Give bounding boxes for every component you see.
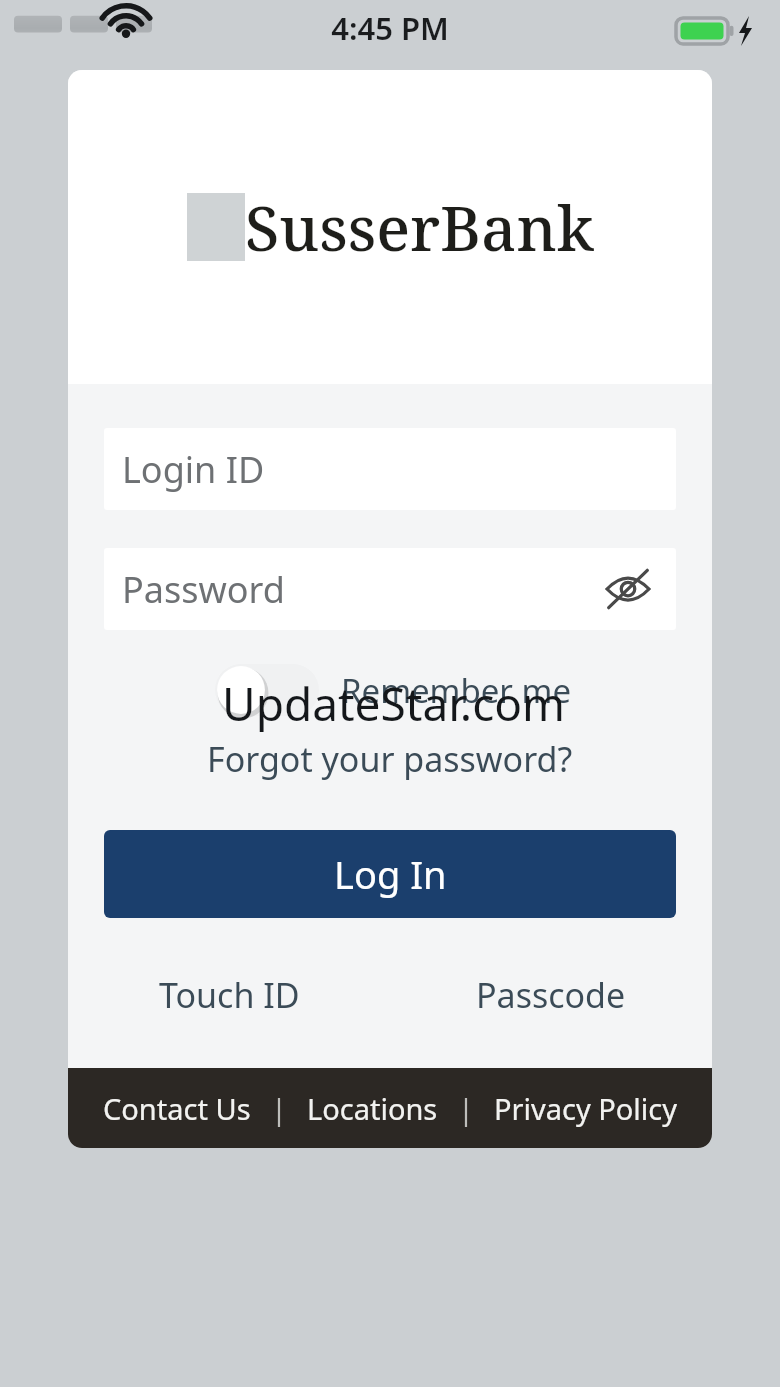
button[interactable]: Passcode xyxy=(390,964,712,1026)
button[interactable]: Locations xyxy=(301,1081,444,1136)
button[interactable]: Privacy Policy xyxy=(488,1081,684,1136)
staticText: | xyxy=(271,1089,287,1128)
staticText: SusserBank xyxy=(245,185,594,269)
staticText: UpdateStar.com xyxy=(222,672,566,735)
staticText: Passcode xyxy=(476,972,626,1018)
staticText: Touch ID xyxy=(159,972,300,1018)
button[interactable]: Contact Us xyxy=(97,1081,257,1136)
button[interactable]: Log In xyxy=(104,830,676,918)
staticText: | xyxy=(458,1089,474,1128)
button[interactable]: Touch ID xyxy=(68,964,390,1026)
staticText: Privacy Policy xyxy=(494,1089,678,1128)
staticText: 4:45 PM xyxy=(331,7,449,49)
button[interactable]: Forgot your password? xyxy=(68,734,712,784)
staticText: Login ID xyxy=(122,445,265,494)
staticText: Contact Us xyxy=(103,1089,251,1128)
staticText: Log In xyxy=(334,848,447,900)
staticText: Password xyxy=(122,565,285,614)
button[interactable]: Remember me xyxy=(215,662,712,718)
staticText: Forgot your password? xyxy=(207,736,573,782)
staticText: Remember me xyxy=(341,668,572,713)
button[interactable]: Login ID xyxy=(104,428,676,510)
button[interactable]: Password xyxy=(104,548,676,630)
staticText: Locations xyxy=(307,1089,438,1128)
button[interactable]: Show password xyxy=(600,561,656,617)
